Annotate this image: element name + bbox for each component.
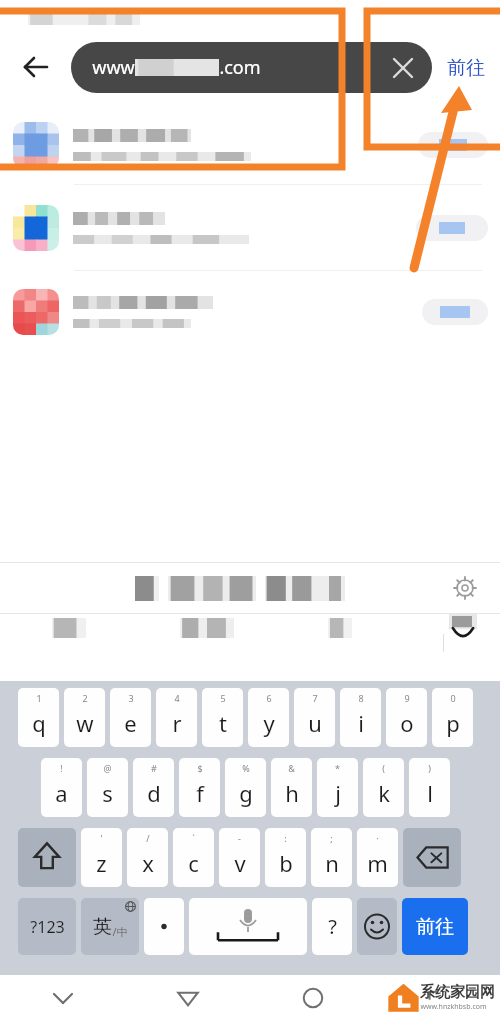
staticText: c xyxy=(188,848,199,878)
staticText: 4 xyxy=(174,692,180,704)
staticText: 英 xyxy=(93,915,112,939)
staticText: u xyxy=(308,708,322,738)
button[interactable]: : xyxy=(265,828,306,887)
button[interactable]: Emoji xyxy=(357,898,397,955)
staticText: : xyxy=(284,832,287,844)
staticText: a xyxy=(55,778,68,808)
button[interactable]: Shift xyxy=(18,828,76,887)
button[interactable]: * xyxy=(317,758,358,817)
button[interactable]: Backspace xyxy=(403,828,461,887)
staticText: t xyxy=(219,708,227,738)
button[interactable]: 1 xyxy=(18,688,59,747)
button[interactable]: Period xyxy=(144,898,184,955)
staticText: # xyxy=(151,762,157,774)
button[interactable]: # xyxy=(133,758,174,817)
staticText: / xyxy=(146,832,150,844)
staticText: i xyxy=(358,708,364,738)
button[interactable]: Open xyxy=(0,185,500,271)
button[interactable]: $ xyxy=(179,758,220,817)
button[interactable]: - xyxy=(219,828,260,887)
button[interactable]: ; xyxy=(311,828,352,887)
staticText: www xyxy=(92,55,135,80)
button[interactable]: & xyxy=(271,758,312,817)
button[interactable]: Recents xyxy=(375,975,500,1020)
button[interactable]: Open xyxy=(422,299,488,325)
staticText: e xyxy=(124,708,137,738)
button[interactable]: 4 xyxy=(156,688,197,747)
staticText: 前往 xyxy=(447,56,485,80)
staticText: · xyxy=(376,832,379,844)
button[interactable]: 前往 xyxy=(437,51,495,85)
button[interactable]: ' xyxy=(81,828,122,887)
button[interactable]: ! xyxy=(41,758,82,817)
button[interactable]: 6 xyxy=(248,688,289,747)
staticText: l xyxy=(427,778,433,808)
staticText: 8 xyxy=(358,692,364,704)
button[interactable]: 前往 xyxy=(402,898,468,955)
staticText: 系统家园网 xyxy=(420,983,495,1002)
staticText: r xyxy=(172,708,182,738)
staticText: o xyxy=(400,708,414,738)
staticText: ( xyxy=(382,762,385,774)
button[interactable]: 英 xyxy=(81,898,139,955)
staticText: /中 xyxy=(112,924,128,939)
staticText: m xyxy=(367,848,388,878)
staticText: 前往 xyxy=(416,915,454,939)
staticText: www.hnzkhbsb.com xyxy=(420,1002,487,1012)
staticText: ? xyxy=(328,913,337,940)
staticText: ` xyxy=(192,832,195,844)
button[interactable]: ) xyxy=(409,758,450,817)
button[interactable]: Back xyxy=(14,45,58,89)
staticText: 9 xyxy=(404,692,410,704)
staticText: ?123 xyxy=(30,916,65,938)
staticText: g xyxy=(239,778,253,808)
staticText: y xyxy=(263,708,275,738)
staticText: 6 xyxy=(266,692,272,704)
staticText: 3 xyxy=(128,692,134,704)
button[interactable]: Open xyxy=(0,271,500,353)
staticText: 5 xyxy=(220,692,226,704)
button[interactable]: Space xyxy=(189,898,307,955)
button[interactable]: Open xyxy=(416,215,488,241)
staticText: k xyxy=(378,778,390,808)
button[interactable]: ? xyxy=(312,898,352,955)
button[interactable]: 2 xyxy=(64,688,105,747)
staticText: & xyxy=(288,762,295,774)
button[interactable]: Hide keyboard xyxy=(0,975,125,1020)
button[interactable]: ( xyxy=(363,758,404,817)
button[interactable]: Open xyxy=(0,105,500,185)
staticText: s xyxy=(102,778,113,808)
staticText: 0 xyxy=(450,692,456,704)
staticText: % xyxy=(242,762,250,774)
button[interactable]: 8 xyxy=(340,688,381,747)
staticText: - xyxy=(238,832,241,844)
button[interactable]: · xyxy=(357,828,398,887)
button[interactable]: @ xyxy=(87,758,128,817)
button[interactable]: Back xyxy=(125,975,250,1020)
button[interactable]: Open xyxy=(418,132,488,158)
button[interactable]: 5 xyxy=(202,688,243,747)
staticText: ' xyxy=(100,832,103,844)
button[interactable]: / xyxy=(127,828,168,887)
button[interactable]: ` xyxy=(173,828,214,887)
button[interactable]: Keyboard settings xyxy=(450,573,480,603)
staticText: 1 xyxy=(36,692,42,704)
button[interactable]: 9 xyxy=(386,688,427,747)
button[interactable]: 7 xyxy=(294,688,335,747)
staticText: ) xyxy=(428,762,431,774)
button[interactable]: Home xyxy=(250,975,375,1020)
staticText: f xyxy=(196,778,204,808)
button[interactable]: ?123 xyxy=(18,898,76,955)
staticText: $ xyxy=(197,762,203,774)
staticText: x xyxy=(142,848,154,878)
button[interactable]: % xyxy=(225,758,266,817)
staticText: q xyxy=(32,708,46,738)
button[interactable]: www xyxy=(71,42,432,93)
staticText: 2 xyxy=(82,692,88,704)
button[interactable]: 0 xyxy=(432,688,473,747)
staticText: w xyxy=(76,708,94,738)
button[interactable]: Clear xyxy=(386,51,420,85)
button[interactable]: 3 xyxy=(110,688,151,747)
staticText: 7 xyxy=(312,692,318,704)
staticText: h xyxy=(285,778,299,808)
